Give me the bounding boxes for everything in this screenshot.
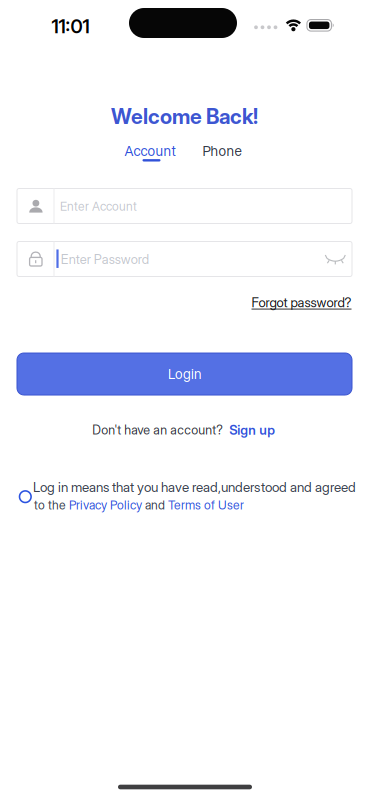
staticText: to the xyxy=(34,498,69,512)
button[interactable]: Enter Account xyxy=(17,188,352,223)
staticText: Welcome Back! xyxy=(111,104,258,129)
staticText: Terms of User xyxy=(168,498,244,512)
staticText: Phone xyxy=(202,143,241,159)
button[interactable]: Forgot password? xyxy=(251,294,351,310)
staticText: Don't have an account? xyxy=(92,422,223,438)
staticText: and xyxy=(142,498,168,512)
staticText: Privacy Policy xyxy=(69,498,142,512)
button[interactable]: Show password xyxy=(322,246,348,272)
button[interactable]: Agree to terms xyxy=(19,491,31,502)
staticText: Login xyxy=(168,366,201,382)
button[interactable]: Login xyxy=(17,353,352,395)
staticText: Account xyxy=(124,143,175,159)
button[interactable]: Phone xyxy=(202,143,241,159)
staticText: Enter Password xyxy=(61,251,149,267)
staticText: Log in means that you have read,understo… xyxy=(33,479,356,495)
staticText: Sign up xyxy=(229,422,275,438)
button[interactable]: Terms of User xyxy=(168,498,244,512)
staticText: Forgot password? xyxy=(251,294,351,310)
button[interactable]: Account xyxy=(124,143,175,159)
staticText: Enter Account xyxy=(60,199,137,214)
staticText: 11:01 xyxy=(51,15,89,38)
button[interactable]: Sign up xyxy=(229,422,275,438)
button[interactable]: Enter Password xyxy=(17,241,352,276)
button[interactable]: Privacy Policy xyxy=(69,498,142,512)
